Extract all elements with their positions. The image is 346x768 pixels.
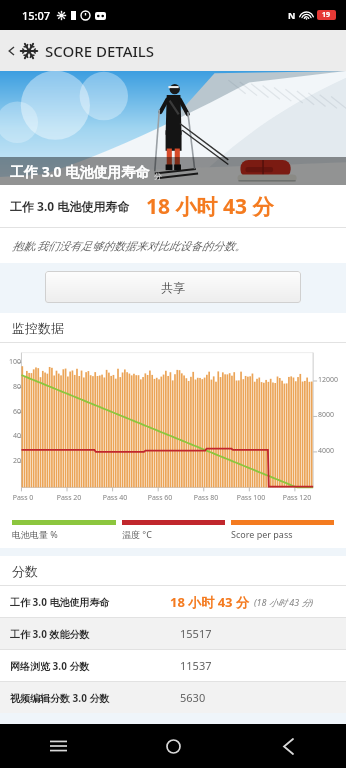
staticText: 监控数据 — [12, 320, 64, 336]
staticText: 工作 3.0 电池使用寿命 — [10, 162, 150, 181]
staticText: 18 小时 43 分 — [146, 192, 274, 221]
staticText: 工作 3.0 电池使用寿命 — [10, 595, 170, 609]
staticText: Pass 0 — [3, 493, 43, 503]
staticText: N — [288, 9, 296, 21]
staticText: Score per pass — [231, 528, 293, 540]
staticText: 12000 — [318, 375, 346, 385]
staticText: 5630 — [180, 690, 206, 705]
staticText: SCORE DETAILS — [45, 41, 155, 61]
staticText: 15:07 — [22, 8, 51, 23]
staticText: 80 — [2, 382, 21, 392]
button[interactable]: Home — [116, 724, 231, 768]
staticText: (18 小时 43 分) — [254, 596, 314, 608]
staticText: 工作 3.0 电池使用寿命 — [10, 198, 130, 214]
staticText: 19 — [322, 10, 331, 20]
staticText: 40 — [2, 431, 21, 441]
staticText: 18 小时 43 分 — [170, 593, 249, 611]
staticText: 分数 — [12, 563, 38, 579]
staticText: 工作 3.0 效能分数 — [10, 627, 180, 641]
button[interactable]: 视频编辑分数 3.0 分数 — [0, 682, 346, 713]
staticText: 20 — [2, 456, 21, 466]
staticText: 视频编辑分数 3.0 分数 — [10, 691, 180, 705]
staticText: 60 — [2, 407, 21, 417]
button[interactable]: Back — [231, 724, 346, 768]
staticText: Pass 120 — [277, 493, 317, 503]
staticText: 温度 °C — [122, 528, 152, 540]
staticText: Pass 80 — [186, 493, 226, 503]
staticText: 15517 — [180, 626, 212, 641]
staticText: Pass 60 — [140, 493, 180, 503]
button[interactable]: 共享 — [45, 271, 301, 303]
button[interactable]: Recents — [0, 724, 116, 768]
staticText: 共享 — [161, 280, 185, 295]
staticText: 100 — [2, 357, 21, 367]
button[interactable]: 网络浏览 3.0 分数 — [0, 650, 346, 681]
staticText: Pass 20 — [49, 493, 89, 503]
staticText: 电池电量 % — [12, 528, 58, 540]
staticText: 网络浏览 3.0 分数 — [10, 659, 180, 673]
button[interactable]: 工作 3.0 效能分数 — [0, 618, 346, 649]
staticText: 抱歉,我们没有足够的数据来对比此设备的分数。 — [12, 238, 246, 253]
staticText: Pass 40 — [95, 493, 135, 503]
staticText: Pass 100 — [231, 493, 271, 503]
staticText: 4000 — [318, 446, 346, 456]
staticText: 11537 — [180, 658, 212, 673]
button[interactable]: 工作 3.0 电池使用寿命 — [0, 586, 346, 617]
staticText: 8000 — [318, 410, 346, 420]
button[interactable]: Back — [4, 35, 20, 67]
staticText: 分 — [154, 171, 162, 181]
